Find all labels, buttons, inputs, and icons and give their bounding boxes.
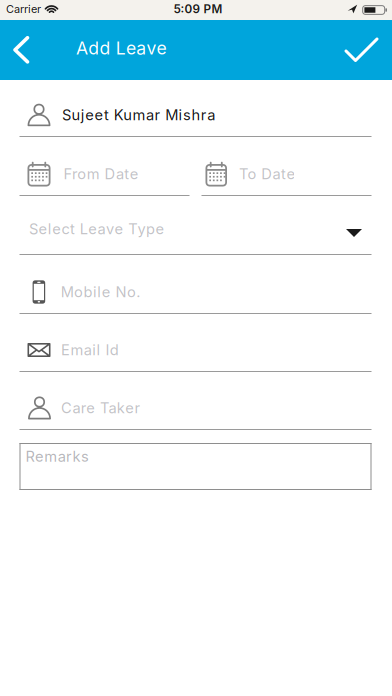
staticText: Email Id bbox=[61, 341, 119, 359]
staticText: 5:09 PM bbox=[173, 2, 222, 16]
button[interactable]: Remarks bbox=[0, 443, 392, 490]
button[interactable]: Email Id bbox=[0, 314, 392, 372]
staticText: Care Taker bbox=[61, 399, 141, 417]
staticText: Remarks bbox=[25, 447, 89, 465]
button[interactable]: Care Taker bbox=[0, 372, 392, 430]
button[interactable] bbox=[0, 38, 28, 62]
button[interactable]: Mobile No. bbox=[0, 255, 392, 314]
staticText: Sujeet Kumar Mishra bbox=[62, 106, 215, 124]
staticText: To Date bbox=[239, 165, 295, 183]
staticText: Add Leave bbox=[76, 37, 167, 59]
button[interactable]: Select Leave Type bbox=[0, 196, 392, 255]
button[interactable]: To Date bbox=[196, 161, 392, 186]
button[interactable] bbox=[346, 39, 392, 61]
staticText: Select Leave Type bbox=[29, 220, 164, 238]
button[interactable]: Sujeet Kumar Mishra bbox=[0, 80, 392, 137]
staticText: From Date bbox=[63, 165, 139, 183]
staticText: Mobile No. bbox=[61, 283, 140, 301]
button[interactable]: From Date bbox=[0, 161, 196, 186]
staticText: Carrier bbox=[6, 2, 41, 16]
